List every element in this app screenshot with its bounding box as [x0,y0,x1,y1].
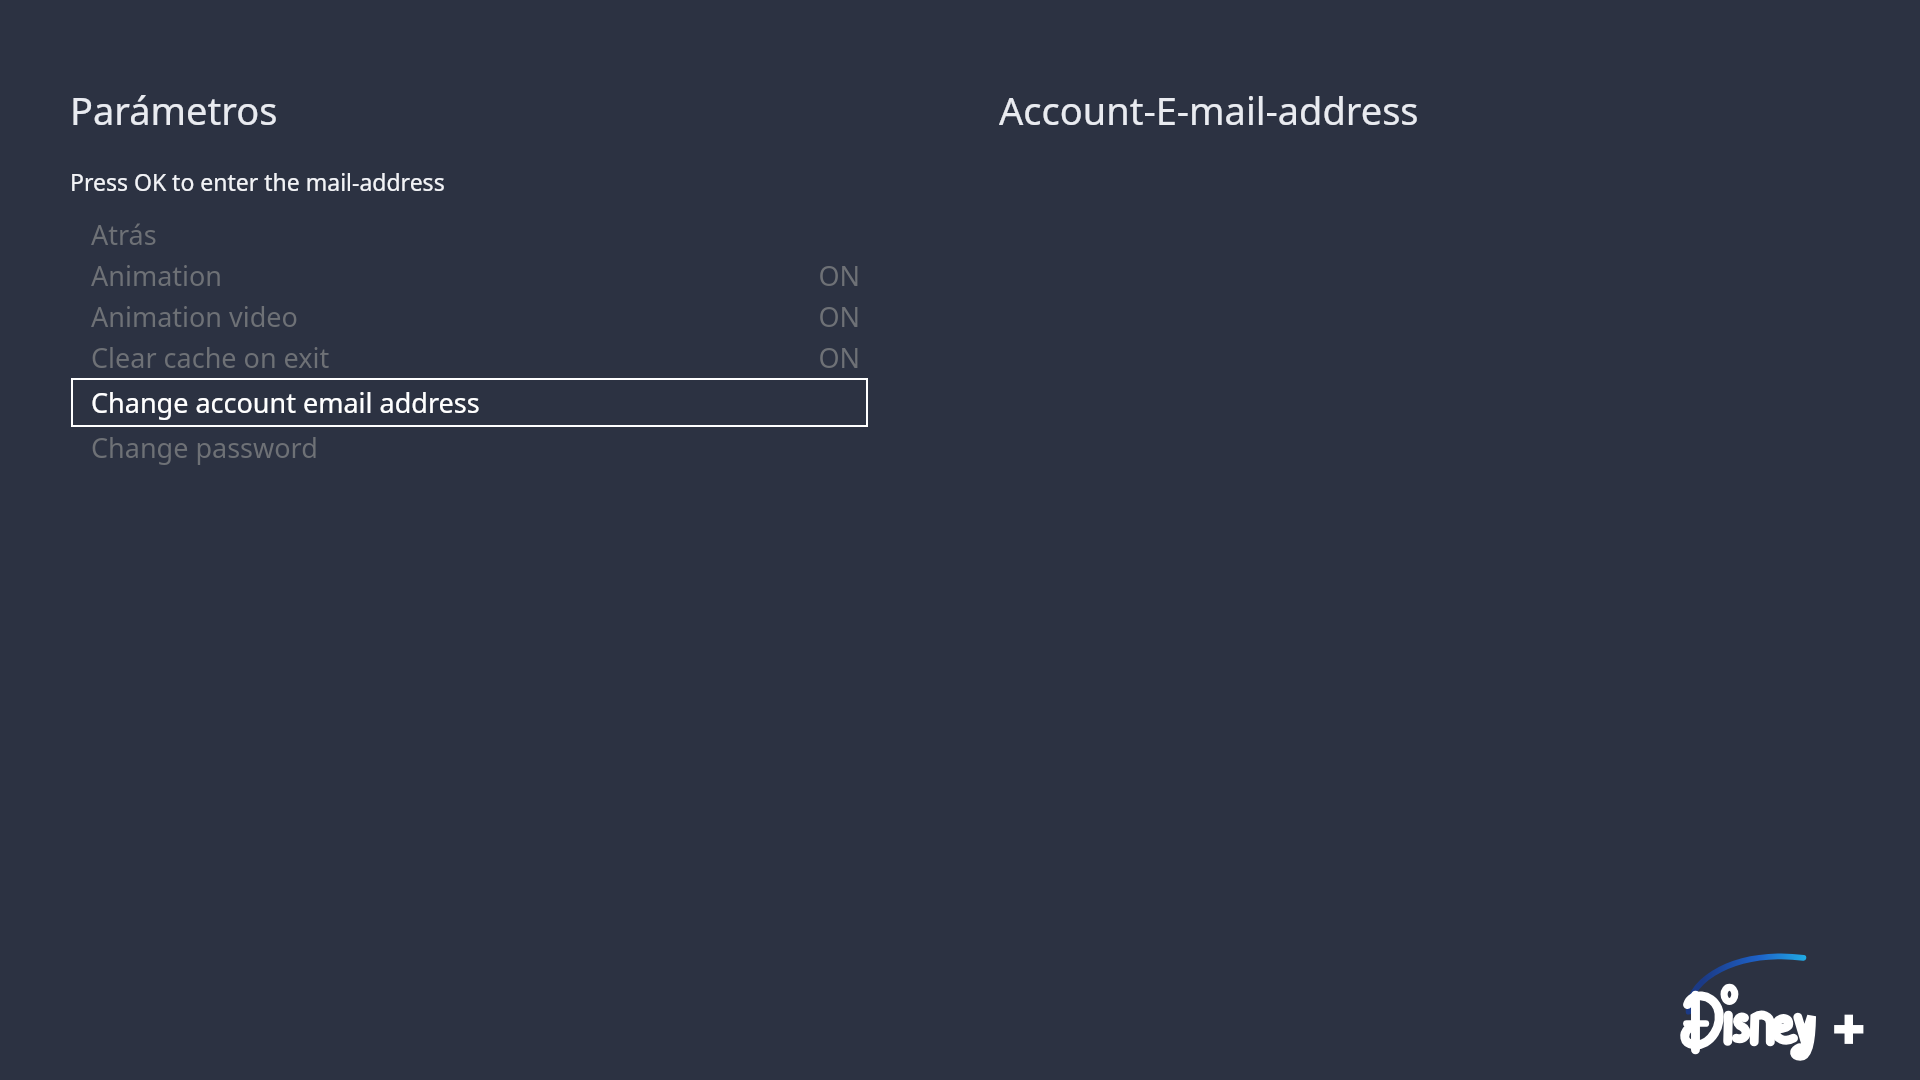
staticText: Account-E-mail-address [999,84,1419,136]
staticText: Animation video [91,298,298,335]
staticText: ON [818,298,860,335]
staticText: Parámetros [70,84,278,136]
button[interactable]: Animation video [71,296,868,337]
button[interactable]: Atrás [71,214,868,255]
button[interactable]: Change account email address [71,378,868,427]
button[interactable]: Change password [71,427,868,468]
staticText: ON [818,257,860,294]
staticText: Atrás [91,216,157,253]
staticText: ON [818,339,860,376]
button[interactable]: Animation [71,255,868,296]
staticText: Change account email address [91,384,480,421]
staticText: Change password [91,429,318,466]
staticText: Animation [91,257,223,294]
staticText: Press OK to enter the mail-address [70,166,445,197]
staticText: Clear cache on exit [91,339,330,376]
other: Disney Plus [1680,950,1895,1055]
button[interactable]: Clear cache on exit [71,337,868,378]
